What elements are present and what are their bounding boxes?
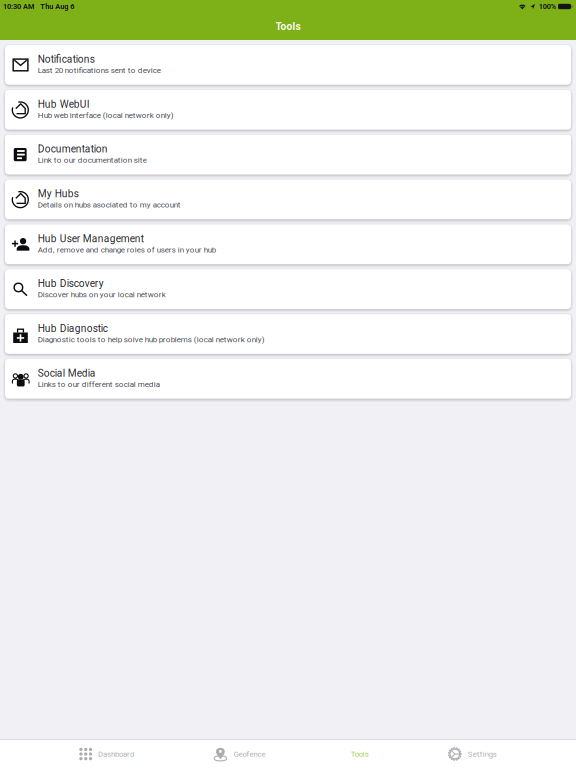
staticText: Notifications (38, 53, 95, 65)
staticText: Tools (275, 21, 300, 32)
button[interactable]: Hub Diagnostic (5, 314, 571, 354)
button[interactable]: Notifications (5, 45, 571, 85)
staticText: Social Media (38, 367, 96, 379)
staticText: Hub Discovery (38, 278, 104, 289)
staticText: Links to our different social media (38, 380, 160, 389)
button[interactable]: Hub User Management (5, 224, 571, 264)
button[interactable]: Hub Discovery (5, 269, 571, 309)
button[interactable]: Documentation (5, 135, 571, 174)
staticText: Details on hubs asociated to my account (38, 200, 181, 210)
staticText: My Hubs (38, 188, 79, 200)
staticText: Link to our documentation site (38, 155, 147, 165)
staticText: Tools (351, 749, 369, 759)
staticText: Dashboard (98, 749, 134, 759)
button[interactable]: Dashboard (79, 739, 134, 768)
button[interactable]: Settings (448, 739, 497, 768)
staticText: Discover hubs on your local network (38, 290, 166, 299)
button[interactable]: Social Media (5, 359, 571, 399)
button[interactable]: Geofence (213, 739, 265, 768)
staticText: 10:30 AM (3, 2, 34, 11)
staticText: 100% (539, 2, 556, 11)
staticText: Add, remove and change roles of users in… (38, 245, 216, 254)
staticText: Settings (468, 749, 497, 759)
button[interactable]: My Hubs (5, 179, 571, 219)
staticText: Hub Diagnostic (38, 322, 108, 334)
staticText: Hub WebUI (38, 98, 90, 110)
staticText: Hub User Management (38, 233, 144, 245)
staticText: Hub web interface (local network only) (38, 110, 174, 120)
staticText: Documentation (38, 143, 108, 155)
button[interactable]: Hub WebUI (5, 90, 571, 130)
staticText: Thu Aug 6 (40, 2, 74, 11)
staticText: Last 20 notifications sent to device (38, 66, 161, 75)
button[interactable]: Tools (345, 739, 369, 768)
staticText: Geofence (233, 749, 265, 759)
staticText: Diagnostic tools to help solve hub probl… (38, 335, 265, 344)
